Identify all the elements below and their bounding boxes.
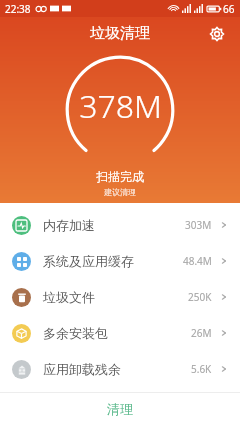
button[interactable]: 应用卸载残余 — [0, 351, 240, 387]
staticText: 378M — [79, 84, 162, 128]
button[interactable]: 内存加速 — [0, 207, 240, 243]
staticText: 48.4M — [183, 254, 212, 268]
staticText: 内存加速 — [43, 217, 95, 233]
staticText: 5.6K — [191, 362, 212, 376]
button[interactable]: 系统及应用缓存 — [0, 243, 240, 279]
staticText: 多余安装包 — [43, 325, 108, 341]
staticText: 250K — [188, 290, 212, 304]
staticText: 垃圾清理 — [90, 24, 150, 43]
button[interactable]: 垃圾文件 — [0, 279, 240, 315]
staticText: 66 — [223, 2, 235, 16]
staticText: 建议清理 — [104, 187, 136, 197]
staticText: 22:38 — [5, 2, 31, 16]
staticText: 垃圾文件 — [43, 289, 95, 305]
staticText: 应用卸载残余 — [43, 361, 121, 377]
button[interactable]: 清理 — [0, 392, 240, 426]
staticText: 303M — [185, 218, 212, 232]
button[interactable]: 设置 — [204, 21, 230, 47]
staticText: 系统及应用缓存 — [43, 253, 134, 269]
staticText: 清理 — [107, 401, 133, 417]
staticText: 扫描完成 — [96, 169, 144, 184]
staticText: 26M — [191, 326, 212, 340]
button[interactable]: 多余安装包 — [0, 315, 240, 351]
